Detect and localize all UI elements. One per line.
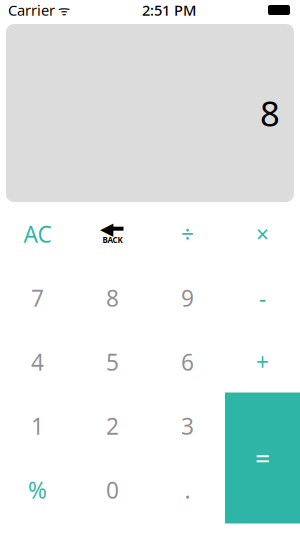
staticText: 7 <box>31 283 44 313</box>
staticText: 9 <box>181 283 194 313</box>
button[interactable]: AC <box>0 202 75 266</box>
button[interactable]: 2 <box>75 394 150 458</box>
button[interactable]: 7 <box>0 266 75 330</box>
staticText: AC <box>23 219 51 249</box>
button[interactable]: Back <box>75 202 150 266</box>
button[interactable]: 4 <box>0 330 75 394</box>
button[interactable]: 1 <box>0 394 75 458</box>
staticText: ◀ <box>100 219 113 239</box>
staticText: + <box>256 347 269 377</box>
staticText: Carrier <box>8 0 55 20</box>
button[interactable]: 6 <box>150 330 225 394</box>
staticText: ᯤ <box>55 1 70 19</box>
button[interactable]: + <box>225 330 300 394</box>
staticText: 3 <box>181 411 194 441</box>
staticText: 8 <box>260 90 280 136</box>
button[interactable]: . <box>150 458 225 522</box>
staticText: ÷ <box>181 219 194 249</box>
staticText: 8 <box>106 283 119 313</box>
staticText: 6 <box>181 347 194 377</box>
button[interactable]: - <box>225 266 300 330</box>
staticText: 0 <box>106 475 119 505</box>
button[interactable]: 9 <box>150 266 225 330</box>
button[interactable]: = <box>225 392 300 523</box>
staticText: = <box>255 440 270 476</box>
staticText: 2:51 PM <box>142 0 196 20</box>
staticText: . <box>184 475 190 505</box>
staticText: % <box>28 475 47 505</box>
staticText: 2 <box>106 411 119 441</box>
button[interactable]: 0 <box>75 458 150 522</box>
button[interactable]: % <box>0 458 75 522</box>
staticText: BACK <box>102 235 122 245</box>
button[interactable]: 3 <box>150 394 225 458</box>
button[interactable]: 5 <box>75 330 150 394</box>
staticText: 1 <box>31 411 44 441</box>
button[interactable]: × <box>225 202 300 266</box>
button[interactable]: 8 <box>75 266 150 330</box>
button[interactable]: ÷ <box>150 202 225 266</box>
staticText: 4 <box>31 347 44 377</box>
staticText: 5 <box>106 347 119 377</box>
staticText: - <box>259 283 266 313</box>
staticText: × <box>256 219 269 249</box>
